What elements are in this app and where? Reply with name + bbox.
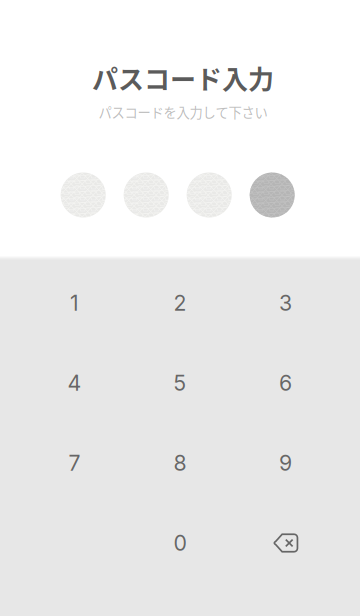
button[interactable]: 4 (22, 343, 127, 423)
staticText: 9 (279, 450, 292, 476)
staticText: パスコード入力 (92, 59, 274, 97)
button[interactable]: 1 (22, 263, 127, 343)
button[interactable]: 6 (233, 343, 338, 423)
button[interactable]: 7 (22, 423, 127, 503)
button[interactable]: 5 (127, 343, 232, 423)
button[interactable]: 8 (127, 423, 232, 503)
button[interactable]: 2 (127, 263, 232, 343)
staticText: 7 (68, 450, 80, 476)
button[interactable]: 0 (127, 503, 232, 583)
button[interactable]: 3 (233, 263, 338, 343)
staticText: 8 (173, 450, 186, 476)
staticText: 4 (67, 370, 81, 396)
button[interactable]: 9 (233, 423, 338, 503)
staticText: 5 (173, 370, 186, 396)
staticText: 1 (70, 290, 79, 316)
staticText: パスコードを入力して下さい (98, 102, 267, 122)
staticText: 3 (279, 290, 292, 316)
button[interactable]: Delete (233, 503, 338, 583)
staticText: 0 (173, 530, 186, 556)
staticText: 2 (173, 290, 186, 316)
staticText: 6 (279, 370, 292, 396)
